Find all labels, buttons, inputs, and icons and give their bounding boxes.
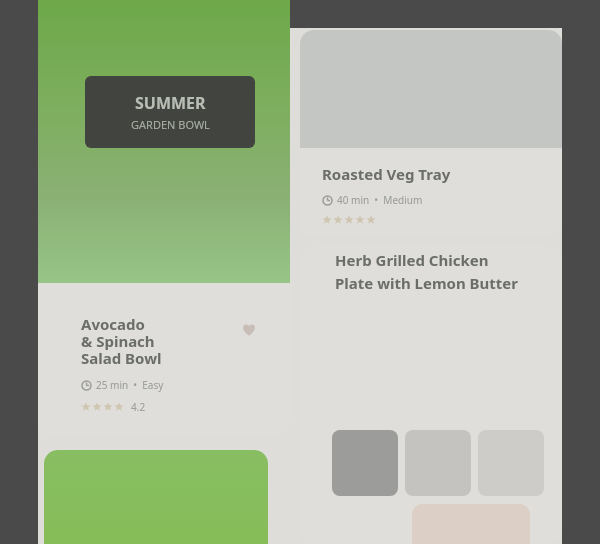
staticText: Avocado & Spinach Salad Bowl	[81, 314, 162, 369]
button[interactable]: Related recipe 1	[332, 430, 398, 496]
staticText: 40 min • Medium	[337, 193, 423, 207]
button[interactable]	[44, 450, 268, 544]
staticText: 4.2	[131, 400, 146, 414]
staticText: SUMMER	[135, 92, 206, 114]
button[interactable]: Herb Grilled Chicken	[300, 246, 562, 544]
staticText: Herb Grilled Chicken	[335, 250, 489, 270]
staticText: Plate with Lemon Butter	[335, 273, 519, 293]
button[interactable]: Roasted Veg Tray	[300, 30, 562, 236]
staticText: GARDEN BOWL	[131, 117, 210, 132]
button[interactable]: SUMMER	[38, 0, 290, 436]
staticText: 25 min • Easy	[96, 378, 164, 392]
button[interactable]: Save recipe	[234, 314, 264, 344]
staticText: Roasted Veg Tray	[322, 164, 451, 184]
